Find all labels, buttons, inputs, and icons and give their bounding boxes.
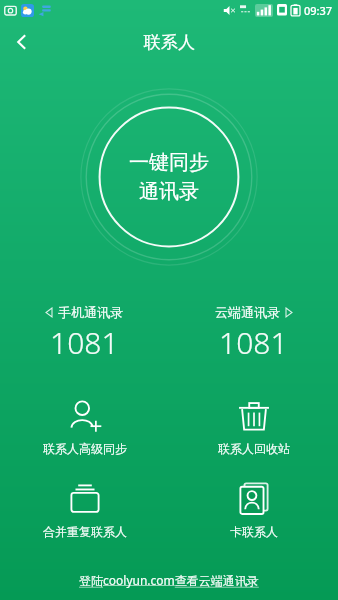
staticText: 09:37 <box>304 3 333 18</box>
staticText: 手机通讯录 <box>58 304 123 320</box>
staticText: 云端通讯录 <box>215 304 280 320</box>
button[interactable]: 一键同步 <box>80 88 258 266</box>
button[interactable]: 登陆coolyun.com查看云端通讯录 <box>0 564 338 600</box>
button[interactable]: 云端通讯录 <box>169 302 338 365</box>
button[interactable]: 联系人回收站 <box>169 395 338 460</box>
staticText: 合并重复联系人 <box>43 524 127 539</box>
staticText: 一键同步 <box>129 150 209 175</box>
staticText: 联系人高级同步 <box>43 441 127 456</box>
staticText: 登陆coolyun.com查看云端通讯录 <box>79 572 259 588</box>
button[interactable]: Back <box>0 20 44 64</box>
staticText: 通讯录 <box>139 179 199 204</box>
staticText: 联系人回收站 <box>218 441 290 456</box>
staticText: 卡联系人 <box>230 524 278 539</box>
button[interactable]: 联系人高级同步 <box>0 395 169 460</box>
button[interactable]: 手机通讯录 <box>0 302 169 365</box>
staticText: 1081 <box>50 322 119 363</box>
button[interactable]: 合并重复联系人 <box>0 478 169 543</box>
button[interactable]: 卡联系人 <box>169 478 338 543</box>
staticText: 联系人 <box>144 32 195 53</box>
staticText: 1081 <box>219 322 288 363</box>
